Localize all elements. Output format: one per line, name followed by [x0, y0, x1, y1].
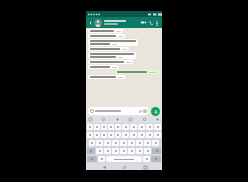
button[interactable]: Key — [146, 132, 153, 138]
button[interactable] — [88, 34, 125, 38]
button[interactable]: Key — [152, 140, 159, 146]
button[interactable] — [88, 47, 129, 51]
button[interactable] — [115, 70, 160, 74]
button[interactable] — [88, 29, 123, 33]
button[interactable] — [88, 60, 133, 64]
button[interactable]: Key — [130, 132, 137, 138]
button[interactable] — [88, 52, 136, 59]
button[interactable]: Key — [108, 124, 114, 130]
button[interactable]: Key — [101, 132, 107, 138]
button[interactable] — [88, 107, 149, 115]
button[interactable]: Toolbar action 2 — [101, 117, 106, 122]
button[interactable]: Key — [104, 148, 111, 154]
button[interactable]: Toolbar action 6 — [155, 117, 160, 122]
button[interactable]: Toolbar action 5 — [142, 117, 147, 122]
button[interactable]: Symbols — [87, 156, 97, 162]
button[interactable] — [88, 75, 125, 79]
button[interactable]: Key — [94, 132, 100, 138]
button[interactable]: Key — [122, 124, 129, 130]
button[interactable]: Key — [122, 132, 129, 138]
button[interactable]: Contact photo — [94, 19, 102, 27]
button[interactable]: Key — [112, 140, 119, 146]
button[interactable]: Video call — [140, 19, 147, 26]
button[interactable]: Enter — [151, 156, 161, 162]
button[interactable]: Key — [108, 132, 114, 138]
button[interactable]: Space — [106, 156, 142, 162]
button[interactable]: Key — [96, 140, 103, 146]
button[interactable]: Key — [98, 156, 105, 162]
button[interactable]: Key — [154, 124, 161, 130]
button[interactable]: Back — [88, 20, 94, 26]
button[interactable]: Key — [120, 148, 127, 154]
button[interactable] — [88, 39, 138, 46]
button[interactable]: Key — [138, 124, 145, 130]
button[interactable]: Key — [136, 140, 143, 146]
button[interactable]: Key — [154, 132, 161, 138]
button[interactable]: Toolbar action 1 — [88, 117, 93, 122]
button[interactable]: Recent apps — [142, 164, 148, 170]
button[interactable]: Key — [128, 140, 135, 146]
button[interactable]: Key — [101, 124, 107, 130]
button[interactable]: Key — [87, 124, 93, 130]
button[interactable]: Key — [96, 148, 103, 154]
button[interactable]: Backspace — [152, 148, 161, 154]
button[interactable]: Key — [120, 140, 127, 146]
button[interactable]: Toolbar action 4 — [128, 117, 133, 122]
button[interactable]: Voice call — [147, 19, 154, 26]
button[interactable]: Key — [87, 132, 93, 138]
button[interactable]: Key — [136, 148, 143, 154]
button[interactable]: Send voice message — [151, 107, 160, 116]
button[interactable]: Key — [138, 132, 145, 138]
button[interactable]: Key — [115, 132, 121, 138]
button[interactable]: Key — [146, 124, 153, 130]
button[interactable]: Key — [143, 156, 150, 162]
button[interactable] — [88, 65, 119, 69]
button[interactable]: Key — [115, 124, 121, 130]
button[interactable]: Back — [101, 164, 107, 170]
button[interactable]: Toolbar action 3 — [115, 117, 120, 122]
button[interactable]: Home — [121, 164, 127, 170]
button[interactable]: Key — [94, 124, 100, 130]
button[interactable]: Key — [144, 148, 151, 154]
button[interactable] — [104, 20, 140, 25]
button[interactable]: Key — [128, 148, 135, 154]
button[interactable]: Key — [104, 140, 111, 146]
button[interactable]: Key — [144, 140, 151, 146]
button[interactable]: Shift — [87, 148, 95, 154]
button[interactable]: Key — [89, 140, 95, 146]
button[interactable]: More options — [154, 20, 160, 26]
button[interactable]: Key — [112, 148, 119, 154]
button[interactable]: Key — [130, 124, 137, 130]
